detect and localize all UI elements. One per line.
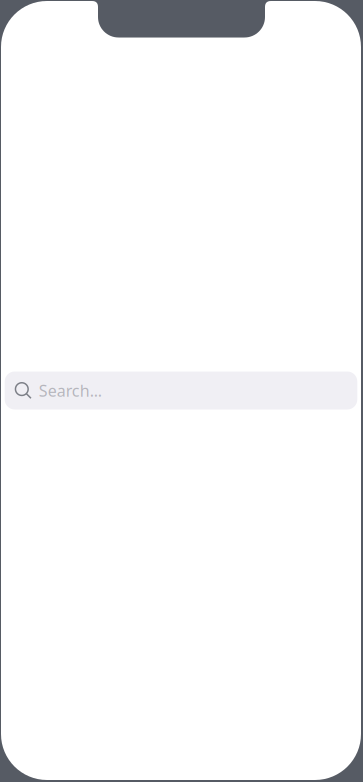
button[interactable]: Search... [5, 371, 357, 409]
staticText: Search... [39, 380, 102, 401]
